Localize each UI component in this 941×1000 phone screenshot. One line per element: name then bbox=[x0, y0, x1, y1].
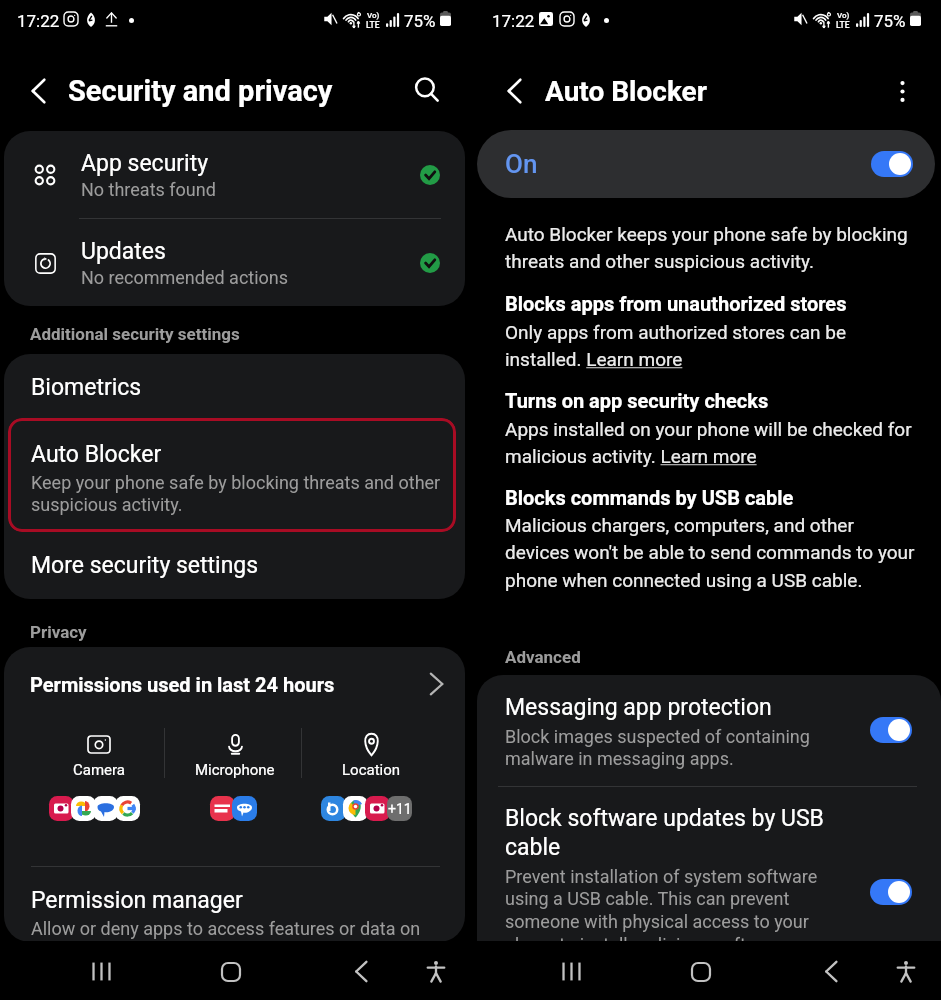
button[interactable]: Home bbox=[671, 941, 731, 1000]
staticText: Additional security settings bbox=[30, 324, 240, 344]
button[interactable]: Camera bbox=[31, 732, 167, 788]
button[interactable]: Permissions used in last 24 hours bbox=[30, 659, 443, 709]
staticText: Turns on app security checks bbox=[505, 389, 917, 412]
button[interactable]: Accessibility bbox=[876, 941, 936, 1000]
staticText: Only apps from authorized stores can be … bbox=[505, 321, 917, 371]
button[interactable]: Toggle switch bbox=[870, 717, 912, 743]
staticText: More security settings bbox=[31, 552, 259, 579]
staticText: Auto Blocker bbox=[545, 75, 707, 108]
button[interactable]: Block software updates by USB cable bbox=[477, 787, 941, 941]
button[interactable]: Navigate up bbox=[497, 74, 531, 108]
staticText: No threats found bbox=[81, 179, 216, 200]
staticText: Malicious chargers, computers, and other… bbox=[505, 514, 917, 592]
staticText: Vo) bbox=[837, 11, 850, 20]
button[interactable]: Updates bbox=[29, 219, 440, 306]
staticText: Blocks apps from unauthorized stores bbox=[505, 292, 917, 315]
button[interactable]: App security bbox=[29, 131, 440, 218]
staticText: Block software updates by USB cable bbox=[505, 805, 845, 861]
staticText: Permissions used in last 24 hours bbox=[30, 673, 335, 696]
staticText: Camera bbox=[73, 761, 125, 779]
staticText: 75% bbox=[404, 11, 436, 31]
staticText: On bbox=[505, 149, 538, 179]
button[interactable]: More security settings bbox=[4, 532, 465, 599]
staticText: Apps installed on your phone will be che… bbox=[505, 418, 917, 468]
staticText: 17:22 bbox=[17, 11, 60, 31]
button[interactable]: Toggle switch bbox=[870, 879, 912, 905]
staticText: Location bbox=[342, 761, 401, 779]
staticText: Prevent installation of system software … bbox=[505, 866, 845, 942]
staticText: Security and privacy bbox=[68, 74, 333, 108]
staticText: LTE bbox=[366, 20, 380, 30]
button[interactable]: Back bbox=[331, 941, 391, 1000]
staticText: Block images suspected of containing mal… bbox=[505, 726, 845, 770]
button[interactable]: Search bbox=[409, 73, 445, 109]
staticText: Updates bbox=[81, 238, 166, 265]
button[interactable]: Navigate up bbox=[21, 74, 55, 108]
staticText: Biometrics bbox=[31, 374, 142, 401]
button[interactable]: Microphone bbox=[167, 732, 303, 788]
staticText: No recommended actions bbox=[81, 267, 289, 288]
button[interactable]: On bbox=[477, 130, 935, 198]
staticText: Messaging app protection bbox=[505, 694, 845, 721]
staticText: Privacy bbox=[30, 622, 87, 642]
button[interactable]: Permission manager bbox=[4, 877, 465, 941]
button[interactable]: Home bbox=[201, 941, 261, 1000]
staticText: Allow or deny apps to access features or… bbox=[31, 918, 445, 942]
staticText: Auto Blocker keeps your phone safe by bl… bbox=[505, 223, 917, 273]
staticText: Vo) bbox=[367, 11, 380, 20]
button[interactable]: Biometrics bbox=[4, 354, 465, 418]
staticText: LTE bbox=[836, 20, 850, 30]
staticText: Keep your phone safe by blocking threats… bbox=[31, 472, 445, 516]
staticText: Microphone bbox=[195, 761, 275, 779]
staticText: Permission manager bbox=[31, 887, 243, 914]
button[interactable]: Back bbox=[801, 941, 861, 1000]
staticText: +11 bbox=[388, 801, 412, 817]
staticText: Auto Blocker bbox=[31, 441, 162, 468]
staticText: App security bbox=[81, 150, 209, 177]
staticText: 75% bbox=[874, 11, 906, 31]
staticText: 17:22 bbox=[492, 11, 535, 31]
button[interactable]: Location bbox=[303, 732, 439, 788]
staticText: Blocks commands by USB cable bbox=[505, 486, 917, 509]
button[interactable]: Recent apps bbox=[71, 941, 131, 1000]
button[interactable]: Messaging app protection bbox=[477, 675, 941, 786]
button[interactable]: Recent apps bbox=[541, 941, 601, 1000]
button[interactable]: More options bbox=[885, 74, 919, 108]
button[interactable]: Toggle switch bbox=[871, 151, 913, 177]
button[interactable]: Auto Blocker bbox=[8, 418, 456, 532]
button[interactable]: Accessibility bbox=[406, 941, 466, 1000]
staticText: Advanced bbox=[505, 647, 581, 667]
